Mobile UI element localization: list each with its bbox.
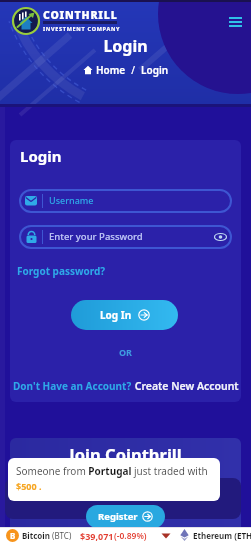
staticText: Username <box>49 194 94 206</box>
staticText: Create New Account <box>132 379 239 393</box>
staticText: (-0.89%) <box>114 530 147 542</box>
staticText: $500 . <box>16 480 42 492</box>
button[interactable]: Username <box>19 189 232 213</box>
staticText: OR <box>10 346 241 358</box>
button[interactable]: Register <box>86 505 165 528</box>
button[interactable]: Home <box>96 63 126 77</box>
button[interactable]: Don't Have an Account? <box>10 379 241 393</box>
staticText: Log In <box>100 308 132 322</box>
button[interactable]: Enter your Password <box>19 225 232 249</box>
staticText: B <box>10 530 16 541</box>
button[interactable]: Forgot password? <box>17 264 106 278</box>
staticText: Bitcoin (BTC) <box>22 530 72 541</box>
staticText: Login <box>0 35 251 57</box>
button[interactable]: Login <box>141 63 169 77</box>
staticText: Register <box>98 510 138 523</box>
button[interactable] <box>226 13 244 30</box>
staticText: Someone from Portugal just traded with <box>16 464 208 478</box>
staticText: $39,071 <box>80 530 114 542</box>
staticText: Enter your Password <box>49 230 143 243</box>
staticText: INVESTMENT COMPANY <box>43 25 121 32</box>
staticText: / <box>126 63 141 77</box>
staticText: Join Cointhrill <box>0 443 251 465</box>
staticText: Login <box>20 146 62 166</box>
staticText: Don't Have an Account? <box>13 379 132 393</box>
staticText: Ethereum (ETH <box>193 530 251 541</box>
staticText: COINTHRILL <box>43 8 118 22</box>
button[interactable]: Log In <box>71 300 178 330</box>
